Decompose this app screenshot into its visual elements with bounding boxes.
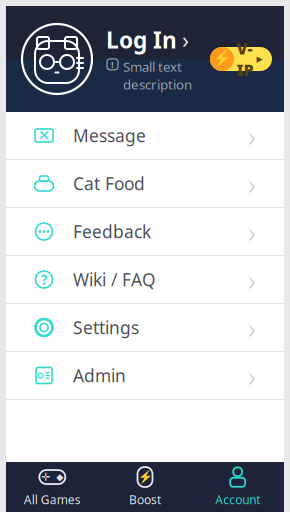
staticText: Cat Food [73,172,145,195]
button[interactable]: Admin [6,352,284,399]
staticText: Account [215,491,260,507]
staticText: › [248,356,256,395]
button[interactable]: VIP [210,47,272,71]
staticText: › [248,164,256,203]
staticText: All Games [24,491,81,507]
staticText: › [248,308,256,347]
staticText: Settings [73,316,139,339]
staticText: description [123,76,192,93]
staticText: › [248,116,256,155]
staticText: ✕ [38,127,50,144]
button[interactable]: Settings [6,304,284,351]
button[interactable]: Account [191,462,284,512]
button[interactable]: Log In [106,25,189,55]
button[interactable]: ⚡ [99,462,191,512]
staticText: VIP [236,38,253,80]
staticText: ⚡ [212,50,232,68]
staticText: › [248,212,256,251]
staticText: ••• [38,225,50,238]
button[interactable]: ••• [6,208,284,255]
staticText: ! [111,58,114,70]
staticText: Log In [106,25,177,55]
staticText: › [248,260,256,299]
staticText: Wiki / FAQ [73,268,156,291]
staticText: ◆ [56,472,63,482]
staticText: Small text [123,58,182,75]
staticText: ▶ [256,54,262,64]
button[interactable]: ✕ [6,112,284,159]
staticText: ? [41,271,47,288]
staticText: ✛ [41,471,50,483]
staticText: › [182,25,189,55]
button[interactable]: ? [6,256,284,303]
staticText: Message [73,124,146,147]
staticText: Boost [129,491,161,507]
button[interactable]: ✛ [6,462,99,512]
staticText: ⚡ [137,470,152,484]
staticText: Admin [73,364,126,387]
staticText: Feedback [73,220,151,243]
button[interactable]: Cat Food [6,160,284,207]
